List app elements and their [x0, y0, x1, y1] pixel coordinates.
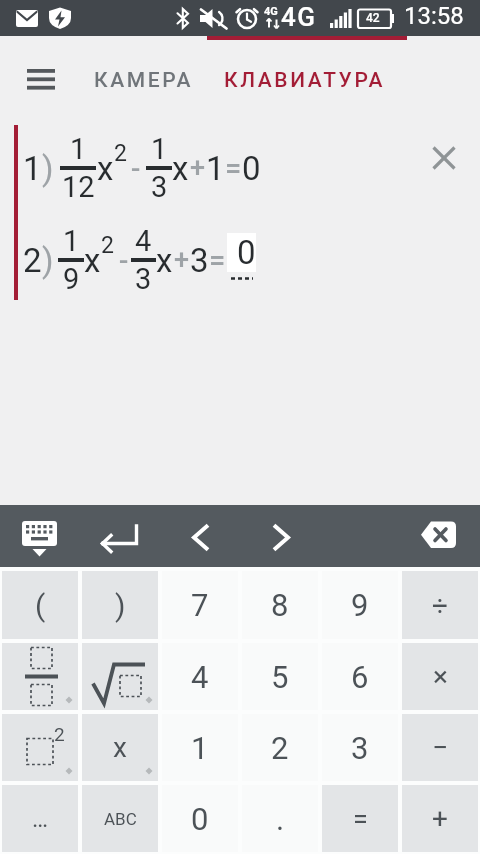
staticText: 3	[190, 241, 209, 280]
staticText: 2	[54, 723, 65, 745]
staticText: 1	[63, 224, 80, 258]
button[interactable]: +	[402, 785, 478, 852]
staticText: 8	[271, 587, 289, 623]
staticText: 7	[191, 587, 209, 623]
staticText: (	[35, 588, 46, 623]
staticText: -	[119, 244, 129, 277]
staticText: 0	[237, 233, 256, 272]
button[interactable]: 5	[242, 643, 318, 710]
button[interactable]	[2, 643, 78, 710]
staticText: 3	[135, 262, 152, 296]
button[interactable]: (	[2, 571, 78, 639]
staticText: 3	[151, 170, 168, 204]
button[interactable]	[410, 509, 470, 565]
staticText: 4	[191, 659, 209, 695]
staticText: x	[84, 241, 101, 280]
button[interactable]: x	[82, 714, 158, 781]
staticText: КЛАВИАТУРА	[224, 68, 386, 93]
staticText: =	[353, 803, 368, 835]
staticText: 6	[351, 659, 369, 695]
button[interactable]	[176, 509, 224, 565]
button[interactable]: 2	[242, 714, 318, 781]
button[interactable]: )	[82, 571, 158, 639]
button[interactable]	[19, 61, 63, 101]
staticText: ABC	[104, 809, 137, 829]
staticText: 1	[206, 149, 225, 188]
button[interactable]: 6	[322, 643, 398, 710]
staticText: …	[32, 805, 49, 833]
button[interactable]	[258, 509, 306, 565]
staticText: x	[113, 731, 127, 764]
staticText: 0	[242, 149, 261, 188]
staticText: )	[42, 241, 54, 280]
staticText: 2	[23, 241, 42, 280]
staticText: 1	[70, 132, 87, 166]
staticText: )	[42, 149, 54, 188]
staticText: +	[432, 802, 448, 835]
staticText: x	[97, 149, 114, 188]
button[interactable]: ×	[402, 643, 478, 710]
staticText: +	[174, 244, 190, 276]
button[interactable]: 0	[162, 785, 238, 852]
staticText: 0	[191, 801, 209, 837]
button[interactable]: 2	[2, 714, 78, 781]
staticText: 2	[101, 232, 114, 259]
button[interactable]	[8, 509, 70, 565]
staticText: 42	[366, 11, 380, 25]
staticText: =	[209, 243, 226, 277]
staticText: 2	[271, 730, 289, 766]
staticText: ×	[433, 660, 448, 693]
staticText: 9	[63, 262, 80, 296]
button[interactable]: 4	[162, 643, 238, 710]
staticText: 2	[114, 140, 127, 167]
staticText: 1	[151, 132, 168, 166]
button[interactable]: …	[2, 785, 78, 852]
staticText: .	[276, 801, 285, 837]
button[interactable]: ABC	[82, 785, 158, 852]
button[interactable]: 7	[162, 571, 238, 639]
staticText: 12	[62, 170, 95, 204]
button[interactable]: 3	[322, 714, 398, 781]
button[interactable]: .	[242, 785, 318, 852]
button[interactable]	[90, 509, 148, 565]
staticText: 5	[271, 659, 289, 695]
staticText: 1	[23, 149, 42, 188]
staticText: =	[225, 151, 242, 185]
staticText: x	[172, 149, 189, 188]
button[interactable]: 8	[242, 571, 318, 639]
button[interactable]: 1	[162, 714, 238, 781]
button[interactable]: ÷	[402, 571, 478, 639]
staticText: 4G	[281, 2, 317, 32]
staticText: )	[115, 588, 126, 623]
staticText: 4	[135, 224, 152, 258]
staticText: −	[432, 731, 449, 764]
button[interactable]	[424, 138, 464, 178]
staticText: ÷	[432, 589, 448, 622]
button[interactable]	[82, 643, 158, 710]
staticText: КАМЕРА	[94, 68, 193, 93]
staticText: 13:58	[404, 2, 464, 30]
staticText: -	[131, 152, 141, 185]
staticText: 1	[191, 730, 209, 766]
staticText: 3	[351, 730, 369, 766]
staticText: x	[156, 241, 173, 280]
button[interactable]: =	[322, 785, 398, 852]
staticText: 9	[351, 587, 369, 623]
button[interactable]: −	[402, 714, 478, 781]
button[interactable]: 9	[322, 571, 398, 639]
staticText: 4G	[264, 5, 278, 18]
staticText: +	[190, 152, 206, 184]
